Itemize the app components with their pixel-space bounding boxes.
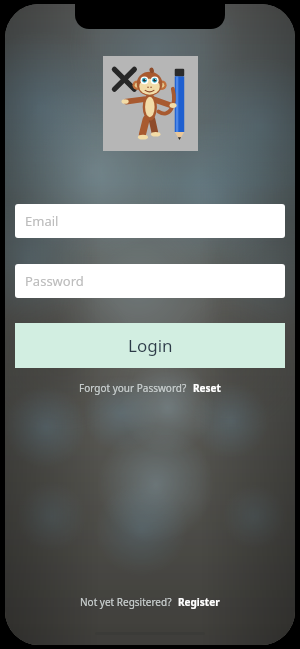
button[interactable]: Register [178, 595, 220, 609]
button[interactable]: Email [15, 204, 285, 238]
staticText: Password [25, 272, 84, 290]
staticText: Not yet Regsitered? [80, 595, 172, 609]
button[interactable]: Login [15, 323, 285, 368]
button[interactable]: Reset [193, 381, 221, 395]
staticText: Login [128, 334, 173, 357]
staticText: Email [25, 212, 59, 230]
staticText: Forgot your Password? [79, 381, 187, 395]
button[interactable]: Password [15, 264, 285, 298]
staticText: Reset [193, 381, 221, 395]
staticText: Register [178, 595, 220, 609]
